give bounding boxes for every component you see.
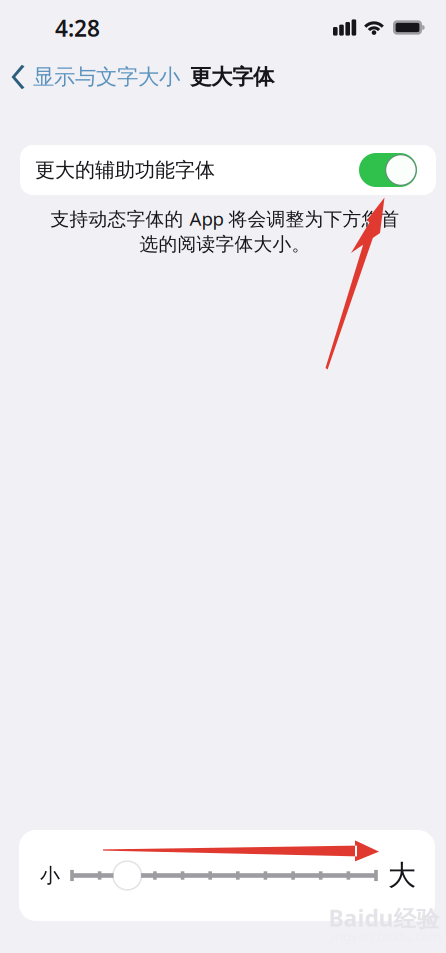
staticText: 支持动态字体的 App 将会调整为下方您首 xyxy=(50,206,399,231)
staticText: 更大字体 xyxy=(190,64,274,90)
staticText: 选的阅读字体大小。 xyxy=(139,233,310,256)
staticText: 更大的辅助功能字体 xyxy=(35,158,215,182)
staticText: 4:28 xyxy=(55,13,100,43)
staticText: 大 xyxy=(388,858,416,893)
button[interactable]: 更大的辅助功能字体 xyxy=(20,145,436,195)
staticText: Baidu经验 xyxy=(328,903,439,933)
button[interactable]: 显示与文字大小 xyxy=(6,55,206,99)
staticText: 显示与文字大小 xyxy=(33,64,180,90)
staticText: 小 xyxy=(40,863,60,888)
